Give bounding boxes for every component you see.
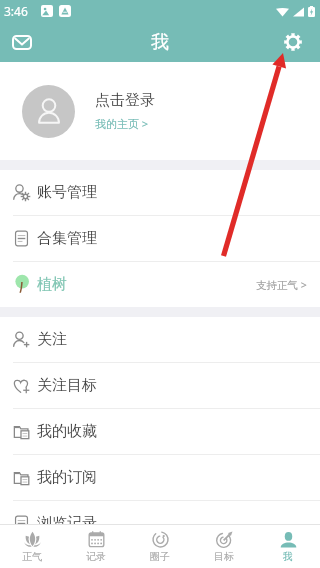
button[interactable]: 植树 — [0, 262, 320, 307]
staticText: 圈子 — [150, 550, 170, 563]
staticText: 目标 — [214, 550, 234, 563]
staticText: 合集管理 — [37, 229, 97, 248]
staticText: 我 — [151, 31, 169, 54]
button[interactable]: 我的收藏 — [0, 409, 320, 454]
staticText: 点击登录 — [95, 91, 155, 110]
staticText: 浏览记录 — [37, 514, 97, 524]
button[interactable]: 账号管理 — [0, 170, 320, 215]
staticText: 3:46 — [4, 3, 28, 19]
staticText: 账号管理 — [37, 183, 97, 202]
button[interactable]: 正气 — [0, 525, 64, 568]
staticText: 我的主页 > — [95, 116, 149, 131]
staticText: 我的订阅 — [37, 468, 97, 487]
button[interactable]: 点击登录 — [0, 62, 320, 160]
button[interactable]: 我 — [256, 525, 320, 568]
button[interactable]: 浏览记录 — [0, 501, 320, 524]
button[interactable]: 记录 — [64, 525, 128, 568]
staticText: 我的收藏 — [37, 422, 97, 441]
staticText: 关注目标 — [37, 376, 97, 395]
staticText: 我 — [283, 550, 293, 563]
button[interactable]: 目标 — [192, 525, 256, 568]
button[interactable]: 关注目标 — [0, 363, 320, 408]
staticText: 记录 — [86, 550, 106, 563]
button[interactable]: 圈子 — [128, 525, 192, 568]
button[interactable]: 合集管理 — [0, 216, 320, 261]
staticText: 支持正气 > — [256, 278, 307, 292]
button[interactable]: Settings — [276, 25, 310, 59]
staticText: 正气 — [22, 550, 42, 563]
button[interactable]: Messages — [2, 22, 42, 62]
staticText: 植树 — [37, 275, 67, 294]
button[interactable]: 关注 — [0, 317, 320, 362]
staticText: 关注 — [37, 330, 67, 349]
button[interactable]: 我的订阅 — [0, 455, 320, 500]
